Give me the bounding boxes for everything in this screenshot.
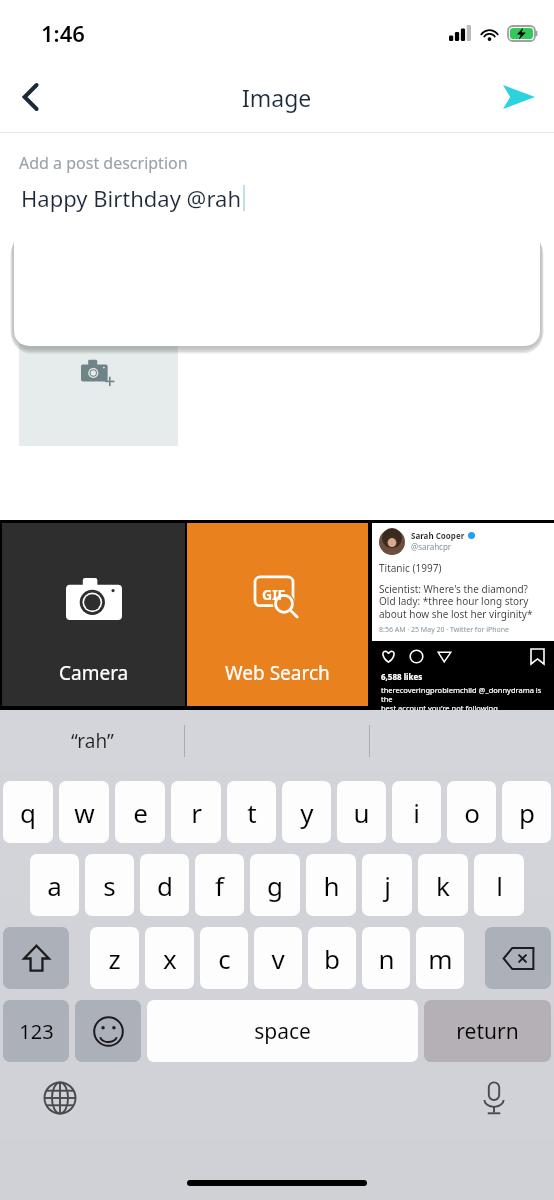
- button[interactable]: a: [30, 854, 79, 916]
- staticText: d: [157, 868, 173, 903]
- button[interactable]: i: [392, 781, 441, 843]
- staticText: return: [456, 1017, 519, 1046]
- staticText: e: [133, 795, 148, 830]
- staticText: s: [103, 868, 116, 903]
- button[interactable]: k: [418, 854, 468, 916]
- button[interactable]: y: [282, 781, 331, 843]
- staticText: Scientist: Where's the diamond? Old lady…: [379, 582, 533, 621]
- button[interactable]: o: [447, 781, 496, 843]
- button[interactable]: Dictation: [470, 1074, 518, 1122]
- button[interactable]: v: [254, 927, 302, 989]
- staticText: l: [496, 868, 503, 903]
- button[interactable]: n: [362, 927, 410, 989]
- staticText: j: [384, 868, 391, 903]
- staticText: h: [323, 868, 340, 903]
- button[interactable]: f: [195, 854, 244, 916]
- staticText: y: [300, 795, 314, 830]
- button[interactable]: j: [362, 854, 412, 916]
- button[interactable]: w: [59, 781, 109, 843]
- button[interactable]: h: [306, 854, 356, 916]
- staticText: Titanic (1997): [379, 561, 442, 575]
- button[interactable]: t: [227, 781, 276, 843]
- staticText: g: [267, 868, 283, 903]
- staticText: @sarahcpr: [411, 541, 452, 552]
- staticText: 123: [19, 1018, 54, 1045]
- staticText: Add a post description: [19, 152, 188, 174]
- button[interactable]: z: [90, 927, 139, 989]
- staticText: Sarah Cooper: [411, 530, 465, 541]
- button[interactable]: Change keyboard: [36, 1074, 84, 1122]
- staticText: 8:56 AM · 25 May 20 · Twitter for iPhone: [379, 625, 510, 635]
- button[interactable]: p: [502, 781, 551, 843]
- staticText: therecoveringproblemchild @_donnydrama i…: [381, 685, 548, 710]
- button[interactable]: b: [308, 927, 356, 989]
- staticText: t: [247, 795, 257, 830]
- button[interactable]: m: [416, 927, 464, 989]
- button[interactable]: Back: [0, 62, 62, 132]
- staticText: space: [254, 1017, 311, 1046]
- button[interactable]: q: [3, 781, 53, 843]
- staticText: 6,588 likes: [381, 671, 423, 682]
- staticText: a: [47, 868, 62, 903]
- button[interactable]: Camera: [2, 523, 185, 706]
- staticText: o: [464, 795, 480, 830]
- staticText: Image: [242, 82, 312, 113]
- button[interactable]: Backspace: [485, 927, 551, 989]
- button[interactable]: g: [250, 854, 300, 916]
- button[interactable]: c: [200, 927, 248, 989]
- staticText: Happy Birthday @rah: [21, 183, 241, 213]
- staticText: x: [163, 941, 177, 976]
- button[interactable]: x: [145, 927, 194, 989]
- button[interactable]: Emoji: [75, 1000, 141, 1062]
- staticText: p: [519, 795, 535, 830]
- staticText: c: [218, 941, 231, 976]
- staticText: z: [108, 941, 121, 976]
- button[interactable]: d: [140, 854, 189, 916]
- staticText: n: [378, 941, 395, 976]
- button[interactable]: return: [424, 1000, 551, 1062]
- button[interactable]: Send: [484, 62, 554, 132]
- staticText: b: [324, 941, 340, 976]
- staticText: q: [20, 795, 36, 830]
- staticText: “rah”: [71, 728, 114, 754]
- button[interactable]: “rah”: [0, 710, 184, 772]
- staticText: 1:46: [41, 18, 85, 48]
- button[interactable]: GIF: [187, 523, 368, 706]
- button[interactable]: 123: [3, 1000, 69, 1062]
- staticText: GIF: [262, 585, 286, 604]
- button[interactable]: e: [115, 781, 165, 843]
- staticText: i: [413, 795, 420, 830]
- button[interactable]: l: [474, 854, 524, 916]
- staticText: v: [271, 941, 285, 976]
- button[interactable]: Shared post: [372, 523, 554, 710]
- staticText: u: [353, 795, 370, 830]
- button[interactable]: Add photo: [19, 344, 178, 446]
- staticText: r: [191, 795, 202, 830]
- staticText: Web Search: [225, 660, 330, 686]
- button[interactable]: r: [171, 781, 221, 843]
- staticText: f: [215, 868, 224, 903]
- staticText: m: [428, 941, 453, 976]
- button[interactable]: space: [147, 1000, 418, 1062]
- button[interactable]: u: [337, 781, 386, 843]
- staticText: Camera: [59, 660, 129, 686]
- staticText: k: [436, 868, 450, 903]
- staticText: w: [74, 795, 95, 830]
- button[interactable]: Shift: [3, 927, 69, 989]
- button[interactable]: s: [85, 854, 134, 916]
